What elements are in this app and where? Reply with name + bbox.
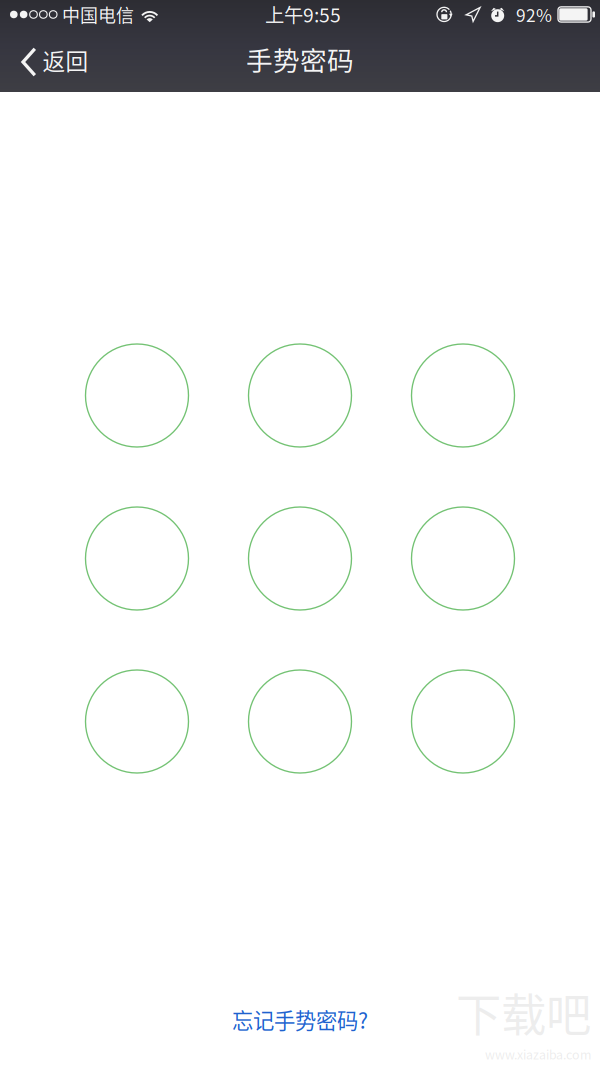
staticText: 忘记手势密码? <box>232 1004 368 1035</box>
button[interactable]: Pattern dot <box>85 507 188 610</box>
button[interactable]: 返回 <box>0 34 101 92</box>
staticText: 92% <box>516 2 552 27</box>
button[interactable]: 忘记手势密码? <box>216 996 384 1043</box>
staticText: 上午9:55 <box>265 0 341 28</box>
staticText: www.xiazaiba.com <box>485 1045 591 1063</box>
staticText: 手势密码 <box>246 40 354 78</box>
button[interactable]: Pattern dot <box>411 507 514 610</box>
button[interactable]: Pattern dot <box>411 670 514 773</box>
button[interactable]: Pattern dot <box>248 670 351 773</box>
button[interactable]: Pattern dot <box>248 344 351 447</box>
staticText: 返回 <box>43 44 89 76</box>
staticText: 中国电信 <box>62 1 134 27</box>
button[interactable]: Pattern dot <box>85 344 188 447</box>
button[interactable]: Pattern dot <box>411 344 514 447</box>
button[interactable]: Pattern dot <box>248 507 351 610</box>
staticText: 下载吧 <box>456 979 591 1045</box>
button[interactable]: Pattern dot <box>85 670 188 773</box>
